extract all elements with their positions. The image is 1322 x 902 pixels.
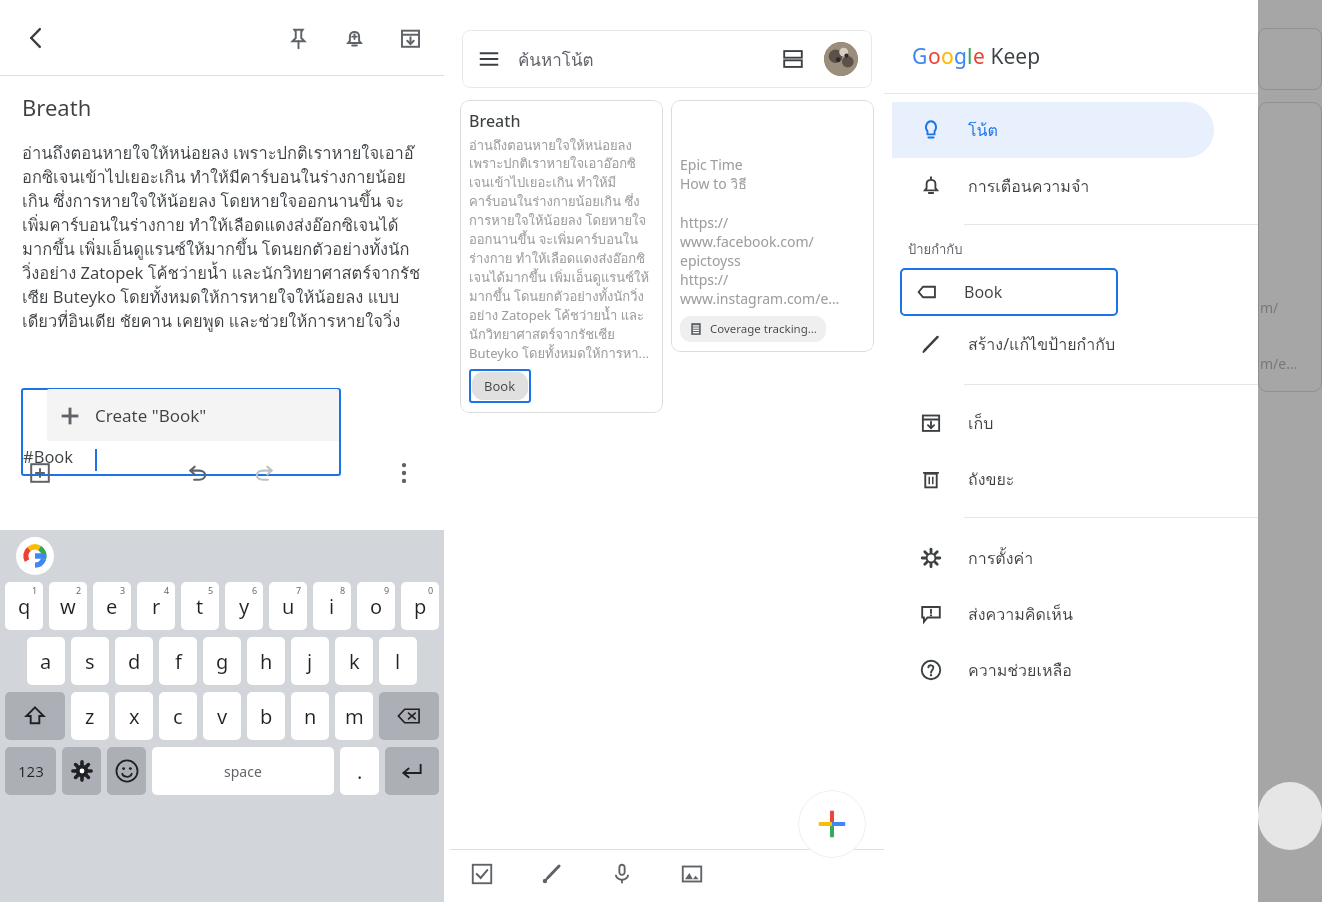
staticText: Epic Time How to วิธี https:// www.faceb…: [680, 155, 840, 308]
staticText: 2: [76, 584, 82, 596]
button[interactable]: โน้ต: [892, 102, 1214, 158]
button[interactable]: x: [115, 692, 153, 740]
staticText: d: [128, 648, 141, 675]
button[interactable]: Archive: [388, 16, 432, 60]
button[interactable]: d: [115, 637, 153, 685]
button[interactable]: j: [291, 637, 329, 685]
button[interactable]: m: [335, 692, 373, 740]
button[interactable]: i: [313, 582, 351, 630]
button[interactable]: New list: [460, 852, 504, 896]
staticText: ส่งความคิดเห็น: [968, 602, 1073, 627]
button[interactable]: e: [93, 582, 131, 630]
button[interactable]: Emoji: [107, 747, 146, 795]
staticText: p: [414, 593, 427, 620]
staticText: Book: [484, 377, 516, 395]
button[interactable]: n: [291, 692, 329, 740]
button[interactable]: Create new note: [798, 790, 866, 858]
button[interactable]: Backspace: [379, 692, 439, 740]
button[interactable]: c: [159, 692, 197, 740]
button[interactable]: Book: [900, 268, 1074, 316]
button[interactable]: New drawing: [530, 852, 574, 896]
staticText: n: [304, 703, 317, 730]
staticText: โน้ต: [968, 118, 998, 143]
staticText: i: [329, 593, 335, 620]
staticText: สร้าง/แก้ไขป้ายกำกับ: [968, 332, 1116, 357]
button[interactable]: Undo: [174, 449, 222, 497]
staticText: 3: [120, 584, 126, 596]
button[interactable]: q: [5, 582, 43, 630]
button[interactable]: Coverage tracking…: [680, 316, 826, 342]
button[interactable]: การตั้งค่า: [892, 530, 1214, 586]
staticText: 5: [208, 584, 214, 596]
button[interactable]: z: [71, 692, 109, 740]
button[interactable]: ค้นหาโน้ต: [462, 30, 872, 88]
button[interactable]: Create "Book": [47, 389, 339, 441]
button[interactable]: Shift: [5, 692, 65, 740]
button[interactable]: t: [181, 582, 219, 630]
button[interactable]: Reminder: [332, 16, 376, 60]
button[interactable]: Redo: [240, 449, 288, 497]
button[interactable]: 123: [5, 747, 56, 795]
staticText: t: [196, 593, 204, 620]
button[interactable]: Google: [16, 537, 54, 575]
staticText: อ่านถึงตอนหายใจให้หน่อยลง เพราะปกติเราหา…: [22, 140, 422, 334]
button[interactable]: Back: [12, 14, 60, 62]
button[interactable]: a: [27, 637, 65, 685]
button[interactable]: f: [159, 637, 197, 685]
staticText: x: [129, 703, 140, 730]
button[interactable]: space: [152, 747, 334, 795]
button[interactable]: o: [357, 582, 395, 630]
button[interactable]: w: [49, 582, 87, 630]
button[interactable]: ส่งความคิดเห็น: [892, 586, 1214, 642]
button[interactable]: #Book: [21, 388, 341, 476]
staticText: o: [370, 593, 383, 620]
staticText: g: [954, 42, 967, 71]
button[interactable]: r: [137, 582, 175, 630]
button[interactable]: ถังขยะ: [892, 451, 1214, 507]
button[interactable]: More options: [380, 449, 428, 497]
button[interactable]: s: [71, 637, 109, 685]
button[interactable]: u: [269, 582, 307, 630]
staticText: l: [395, 648, 401, 675]
staticText: z: [85, 703, 95, 730]
button[interactable]: New voice note: [600, 852, 644, 896]
staticText: Create "Book": [95, 404, 207, 427]
staticText: a: [40, 648, 52, 675]
staticText: v: [217, 703, 228, 730]
button[interactable]: l: [379, 637, 417, 685]
staticText: อ่านถึงตอนหายใจให้หน่อยลง เพราะปกติเราหา…: [469, 135, 654, 363]
button[interactable]: Epic Time How to วิธี https:// www.faceb…: [671, 100, 874, 352]
staticText: Book: [964, 281, 1003, 303]
button[interactable]: v: [203, 692, 241, 740]
button[interactable]: b: [247, 692, 285, 740]
staticText: g: [216, 648, 229, 675]
staticText: Coverage tracking…: [710, 321, 817, 337]
button[interactable]: Breath: [460, 100, 663, 413]
button[interactable]: การเตือนความจำ: [892, 158, 1214, 214]
button[interactable]: Book: [472, 372, 528, 400]
staticText: e: [973, 42, 985, 71]
staticText: #Book: [23, 445, 74, 467]
button[interactable]: ความช่วยเหลือ: [892, 642, 1214, 698]
button[interactable]: เก็บ: [892, 395, 1214, 451]
staticText: s: [85, 648, 95, 675]
staticText: m/: [1260, 298, 1279, 317]
staticText: f: [175, 648, 182, 675]
button[interactable]: Settings: [62, 747, 101, 795]
button[interactable]: h: [247, 637, 285, 685]
button[interactable]: p: [401, 582, 439, 630]
button[interactable]: New image note: [670, 852, 714, 896]
staticText: 9: [384, 584, 390, 596]
button[interactable]: Enter: [385, 747, 439, 795]
staticText: 7: [296, 584, 302, 596]
staticText: c: [173, 703, 183, 730]
staticText: y: [239, 593, 250, 620]
staticText: ป้ายกำกับ: [908, 239, 963, 260]
button[interactable]: Pin: [276, 16, 320, 60]
button[interactable]: k: [335, 637, 373, 685]
button[interactable]: Add: [16, 449, 64, 497]
button[interactable]: สร้าง/แก้ไขป้ายกำกับ: [892, 316, 1214, 372]
button[interactable]: .: [340, 747, 379, 795]
button[interactable]: y: [225, 582, 263, 630]
button[interactable]: g: [203, 637, 241, 685]
